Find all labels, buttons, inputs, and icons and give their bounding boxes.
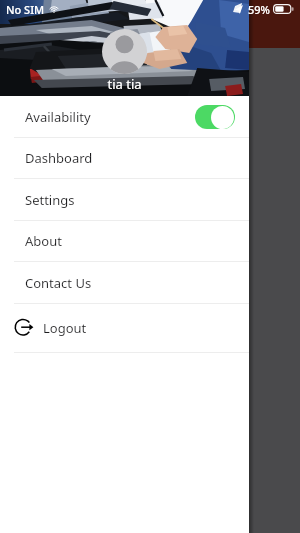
button[interactable]: Availability toggle [195, 105, 235, 129]
staticText: 59% [248, 2, 270, 17]
button[interactable]: About [0, 221, 249, 261]
staticText: Logout [43, 319, 87, 337]
button[interactable]: Availability [0, 96, 249, 137]
staticText: Contact Us [25, 274, 92, 292]
staticText: tia tia [107, 75, 142, 93]
staticText: No SIM [6, 2, 45, 17]
staticText: Settings [25, 191, 75, 209]
button[interactable]: Logout [0, 304, 249, 352]
staticText: Dashboard [25, 149, 93, 167]
other: Logout [14, 319, 34, 338]
button[interactable]: Dashboard [0, 138, 249, 178]
button[interactable]: Settings [0, 179, 249, 220]
staticText: About [25, 232, 62, 250]
staticText: Availability [25, 108, 91, 126]
button[interactable]: Contact Us [0, 262, 249, 303]
